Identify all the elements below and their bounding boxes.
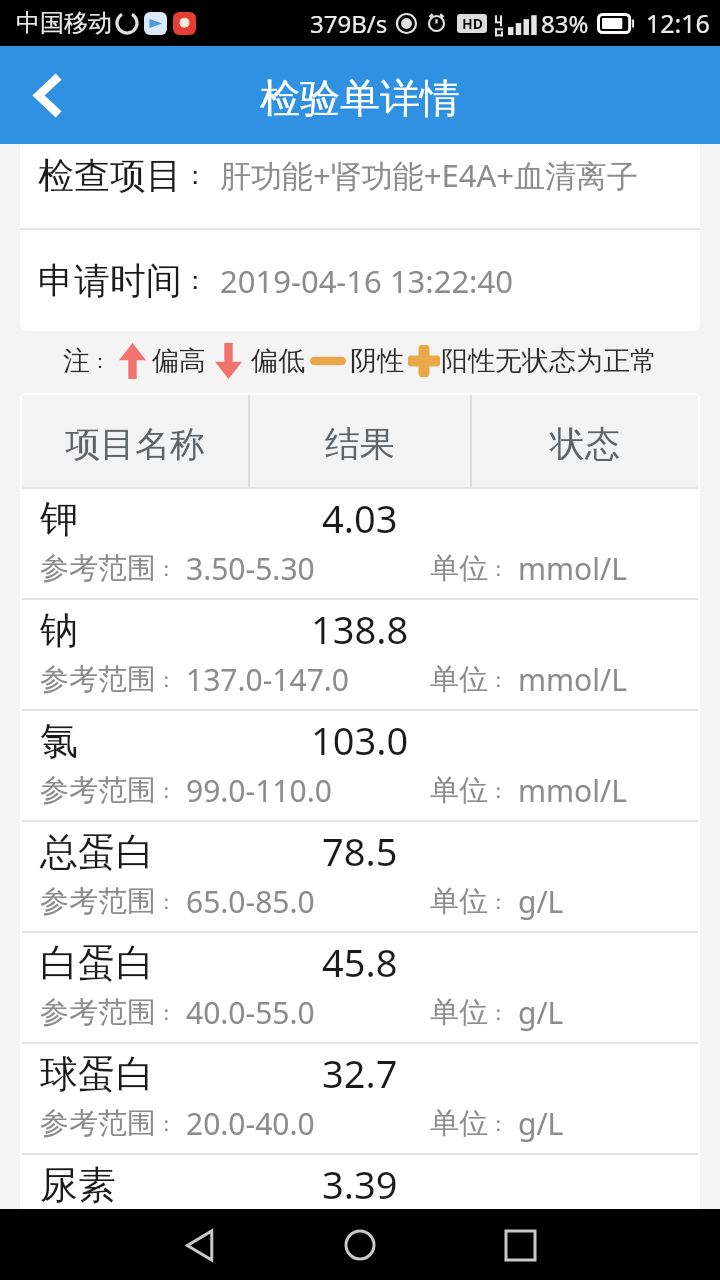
staticText: 单位 xyxy=(430,661,488,698)
staticText: 3.39 xyxy=(322,1158,398,1209)
staticText: ： xyxy=(488,889,509,915)
staticText: 偏高 xyxy=(152,344,206,378)
staticText: mmol/L xyxy=(518,770,627,811)
staticText: ： xyxy=(156,889,177,915)
button[interactable]: 氯 xyxy=(22,711,698,820)
staticText: 单位 xyxy=(430,994,488,1031)
button[interactable]: 钾 xyxy=(22,489,698,598)
staticText: 氯 xyxy=(40,717,78,765)
staticText: 78.5 xyxy=(322,825,398,877)
staticText: 45.8 xyxy=(322,936,398,988)
staticText: 检验单详情 xyxy=(260,73,460,123)
staticText: 钠 xyxy=(40,606,78,654)
staticText: 379B/s xyxy=(310,7,388,40)
button[interactable]: 总蛋白 xyxy=(22,822,698,931)
staticText: ： xyxy=(156,778,177,804)
button[interactable]: Home xyxy=(328,1213,392,1277)
staticText: 12:16 xyxy=(646,6,710,40)
staticText: g/L xyxy=(518,881,564,922)
staticText: ： xyxy=(156,1111,177,1137)
button[interactable]: 结果 xyxy=(250,395,470,487)
staticText: 中国移动 xyxy=(16,8,112,38)
staticText: 参考范围 xyxy=(40,994,156,1031)
button[interactable]: 检查项目 xyxy=(20,144,700,228)
staticText: ： xyxy=(182,264,208,297)
staticText: 阴性 xyxy=(350,344,404,378)
staticText: 尿素 xyxy=(40,1161,116,1209)
button[interactable]: 白蛋白 xyxy=(22,933,698,1042)
staticText: ： xyxy=(90,349,110,374)
staticText: ： xyxy=(156,667,177,693)
staticText: 2019-04-16 13:22:40 xyxy=(220,260,513,302)
staticText: 83% xyxy=(541,7,589,40)
staticText: 状态 xyxy=(550,422,620,466)
staticText: 单位 xyxy=(430,772,488,809)
staticText: 参考范围 xyxy=(40,661,156,698)
staticText: 单位 xyxy=(430,550,488,587)
staticText: 白蛋白 xyxy=(40,939,154,987)
staticText: 40.0-55.0 xyxy=(186,992,315,1033)
staticText: 参考范围 xyxy=(40,550,156,587)
staticText: ： xyxy=(488,778,509,804)
staticText: mmol/L xyxy=(518,548,627,589)
staticText: 申请时间 xyxy=(38,258,182,303)
staticText: 20.0-40.0 xyxy=(186,1103,315,1144)
staticText: 4.03 xyxy=(322,492,398,544)
staticText: mmol/L xyxy=(518,659,627,700)
staticText: 单位 xyxy=(430,883,488,920)
staticText: 结果 xyxy=(325,422,395,466)
staticText: 参考范围 xyxy=(40,772,156,809)
staticText: 3.50-5.30 xyxy=(186,548,315,589)
button[interactable]: Back xyxy=(0,46,93,144)
staticText: ： xyxy=(156,1000,177,1026)
staticText: g/L xyxy=(518,1103,564,1144)
staticText: 偏低 xyxy=(251,344,305,378)
staticText: g/L xyxy=(518,992,564,1033)
button[interactable]: 球蛋白 xyxy=(22,1044,698,1153)
button[interactable]: Back xyxy=(168,1213,232,1277)
staticText: ： xyxy=(488,556,509,582)
staticText: 阳性无状态为正常 xyxy=(441,344,657,378)
staticText: 总蛋白 xyxy=(40,828,154,876)
staticText: 103.0 xyxy=(311,714,409,766)
button[interactable]: Recent apps xyxy=(488,1213,552,1277)
staticText: ： xyxy=(182,159,208,192)
button[interactable]: 项目名称 xyxy=(22,395,248,487)
staticText: 32.7 xyxy=(322,1047,398,1099)
staticText: 项目名称 xyxy=(65,422,205,466)
staticText: 检查项目 xyxy=(38,153,182,198)
staticText: ： xyxy=(488,667,509,693)
staticText: 单位 xyxy=(430,1105,488,1142)
staticText: 138.8 xyxy=(311,603,409,655)
button[interactable]: 钠 xyxy=(22,600,698,709)
staticText: 钾 xyxy=(40,495,78,543)
staticText: 球蛋白 xyxy=(40,1050,154,1098)
staticText: ： xyxy=(156,556,177,582)
button[interactable]: 状态 xyxy=(472,395,698,487)
staticText: 参考范围 xyxy=(40,883,156,920)
staticText: 参考范围 xyxy=(40,1105,156,1142)
staticText: 注 xyxy=(63,344,90,378)
staticText: 65.0-85.0 xyxy=(186,881,315,922)
button[interactable]: 尿素 xyxy=(22,1155,698,1209)
staticText: ： xyxy=(488,1000,509,1026)
staticText: 137.0-147.0 xyxy=(186,659,350,700)
staticText: 肝功能+肾功能+E4A+血清离子 xyxy=(220,154,638,196)
staticText: ： xyxy=(488,1111,509,1137)
staticText: HD xyxy=(462,14,483,33)
staticText: 99.0-110.0 xyxy=(186,770,332,811)
button[interactable]: 申请时间 xyxy=(20,230,700,331)
